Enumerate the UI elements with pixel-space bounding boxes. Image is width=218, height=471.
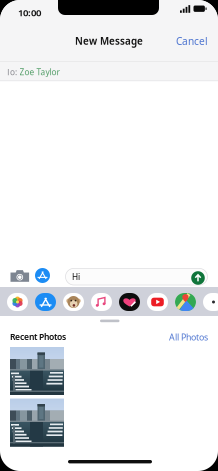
staticText: Zoe Taylor — [20, 66, 60, 78]
button[interactable]: Digital Touch — [119, 293, 140, 311]
button[interactable]: Recent photo 2 — [10, 398, 64, 446]
button[interactable]: Memoji — [63, 293, 84, 311]
staticText: Cancel — [176, 34, 208, 48]
button[interactable]: YouTube — [147, 293, 168, 311]
staticText: To: — [6, 66, 17, 78]
button[interactable]: Recent photo 1 — [10, 347, 64, 395]
button[interactable]: Send — [191, 271, 205, 285]
button[interactable]: Music — [91, 293, 112, 311]
button[interactable]: Cancel — [176, 33, 216, 49]
button[interactable]: Photos — [7, 293, 28, 311]
staticText: Hi — [72, 271, 80, 282]
button[interactable]: More apps — [203, 293, 218, 311]
staticText: New Message — [75, 34, 143, 48]
staticText: All Photos — [169, 331, 208, 341]
button[interactable]: Camera — [10, 269, 29, 282]
button[interactable]: All Photos — [160, 331, 208, 341]
button[interactable]: App Store — [35, 293, 56, 311]
staticText: Recent Photos — [10, 331, 66, 341]
button[interactable]: Maps — [175, 293, 196, 311]
button[interactable]: App Store — [35, 268, 50, 283]
staticText: 10:00 — [18, 6, 41, 18]
